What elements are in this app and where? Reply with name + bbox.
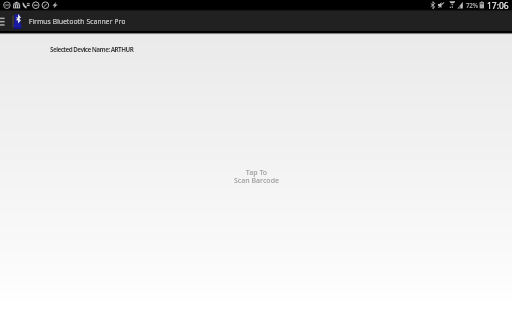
staticText: 72%: [466, 1, 478, 9]
staticText: Tap To Scan Barcode: [234, 168, 279, 185]
staticText: 17:06: [487, 0, 509, 11]
button[interactable]: Tap To Scan Barcode: [0, 44, 512, 320]
staticText: Firmus Bluetooth Scanner Pro: [29, 17, 126, 26]
button[interactable]: Open navigation menu: [0, 11, 12, 31]
staticText: Selected Device Name: ARTHUR: [50, 45, 134, 54]
